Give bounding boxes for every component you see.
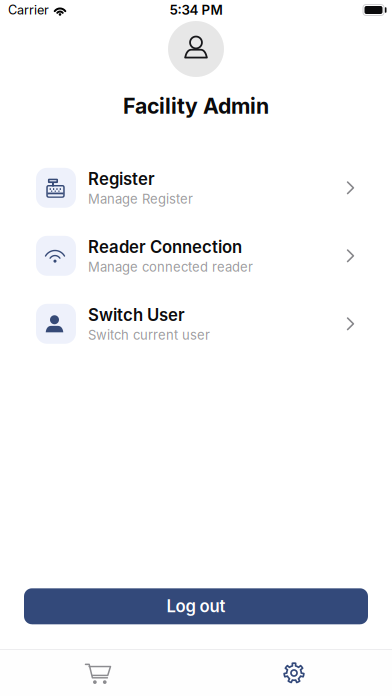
button[interactable]: Reader Connection [0,222,392,290]
button[interactable]: Settings [196,650,392,696]
button[interactable]: Log out [24,588,368,624]
staticText: Log out [166,596,225,616]
staticText: Facility Admin [123,93,269,119]
staticText: Register [88,169,155,189]
staticText: Switch current user [88,327,210,343]
button[interactable]: Register [0,154,392,222]
staticText: Manage Register [88,191,193,207]
staticText: 5:34 PM [169,2,222,18]
staticText: Reader Connection [88,237,242,257]
button[interactable]: Switch User [0,290,392,358]
staticText: Switch User [88,305,185,325]
staticText: Carrier [8,2,49,18]
button[interactable]: Orders [0,650,196,696]
staticText: Manage connected reader [88,259,253,275]
